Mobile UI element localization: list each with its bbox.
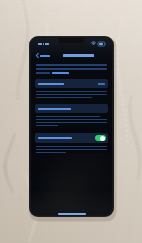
button[interactable] [35,79,108,88]
button[interactable] [52,72,69,74]
button[interactable]: Optimalisert batterilading på [95,135,106,141]
button[interactable] [35,104,108,113]
button[interactable] [35,51,51,60]
button[interactable]: Optimalisert batterilading på [35,133,108,143]
